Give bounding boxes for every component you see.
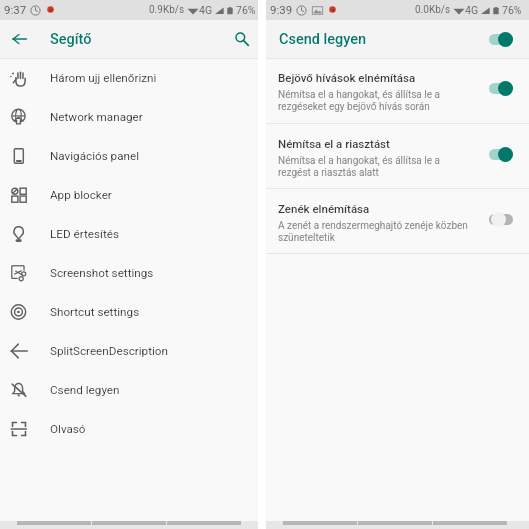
button[interactable]: Bejövő hívások elnémítása xyxy=(266,59,529,123)
staticText: Csend legyen xyxy=(279,31,367,48)
staticText: 4G xyxy=(465,4,479,16)
button[interactable]: SplitScreenDescription xyxy=(0,331,258,370)
button[interactable]: Csend legyen xyxy=(266,20,529,58)
staticText: 76% xyxy=(236,4,256,16)
button[interactable]: Három ujj ellenőrizni xyxy=(0,58,258,97)
button[interactable]: Némítsa el a riasztást xyxy=(266,124,529,188)
button[interactable]: Toggle on xyxy=(489,80,515,96)
staticText: Navigációs panel xyxy=(50,149,140,163)
button[interactable]: Back xyxy=(8,28,30,50)
button[interactable]: Zenék elnémítása xyxy=(266,189,529,253)
staticText: Zenék elnémítása xyxy=(278,202,370,215)
staticText: 0.9Kb/s xyxy=(149,4,185,16)
staticText: SplitScreenDescription xyxy=(50,344,168,358)
button[interactable]: Search xyxy=(230,27,253,50)
staticText: 0.0Kb/s xyxy=(415,4,451,16)
staticText: Network manager xyxy=(50,110,143,124)
button[interactable]: LED értesítés xyxy=(0,214,258,253)
staticText: 9:39 xyxy=(270,3,293,16)
staticText: Segítő xyxy=(50,31,92,48)
staticText: A zenét a rendszermeghajtó zenéje közben… xyxy=(278,220,468,243)
staticText: 76% xyxy=(502,4,522,16)
staticText: 4G xyxy=(199,4,213,16)
button[interactable]: Toggle on xyxy=(489,31,515,47)
staticText: Bejövő hívások elnémítása xyxy=(278,71,416,84)
button[interactable]: Toggle on xyxy=(489,146,515,162)
staticText: Némítsa el a hangokat, és állítsa le a r… xyxy=(278,89,440,112)
staticText: 9:37 xyxy=(4,3,27,16)
staticText: Olvasó xyxy=(50,422,86,436)
staticText: App blocker xyxy=(50,188,112,202)
staticText: Csend legyen xyxy=(50,383,120,397)
button[interactable]: Shortcut settings xyxy=(0,292,258,331)
button[interactable]: Network manager xyxy=(0,97,258,136)
staticText: Shortcut settings xyxy=(50,305,140,319)
button[interactable]: Screenshot settings xyxy=(0,253,258,292)
staticText: LED értesítés xyxy=(50,227,119,241)
button[interactable]: App blocker xyxy=(0,175,258,214)
button[interactable]: Toggle off xyxy=(489,211,515,227)
staticText: Némítsa el a hangokat, és állítsa le a r… xyxy=(278,155,440,178)
staticText: Némítsa el a riasztást xyxy=(278,137,390,150)
staticText: Screenshot settings xyxy=(50,266,154,280)
button[interactable]: Navigációs panel xyxy=(0,136,258,175)
button[interactable]: Csend legyen xyxy=(0,370,258,409)
button[interactable]: Olvasó xyxy=(0,409,258,448)
staticText: Három ujj ellenőrizni xyxy=(50,71,157,85)
